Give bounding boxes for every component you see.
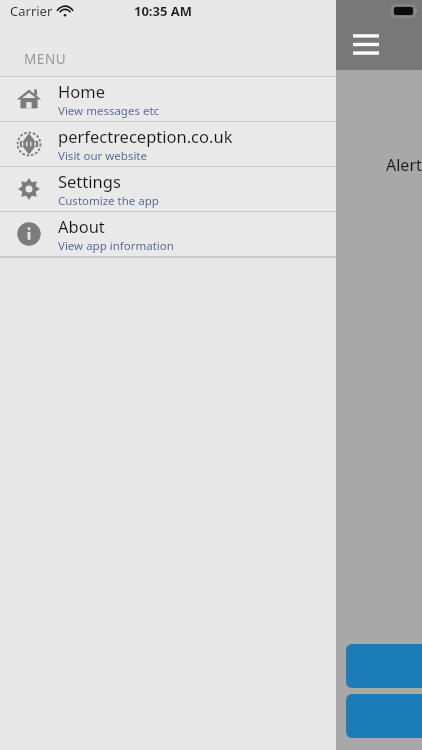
staticText: 10:35 AM — [134, 2, 193, 20]
button[interactable]: Action button — [346, 644, 422, 688]
button[interactable]: Settings — [0, 167, 336, 211]
staticText: Settings — [58, 170, 121, 192]
staticText: Customize the app — [58, 193, 159, 209]
staticText: perfectreception.co.uk — [58, 125, 233, 147]
button[interactable]: perfectreception.co.uk — [0, 122, 336, 166]
staticText: Visit our website — [58, 148, 147, 164]
staticText: Home — [58, 80, 105, 102]
button[interactable]: Home — [0, 77, 336, 121]
button[interactable]: Open menu — [346, 22, 386, 62]
staticText: Alert — [386, 154, 422, 176]
staticText: MENU — [24, 50, 67, 68]
button[interactable]: Action button — [346, 694, 422, 738]
button[interactable]: About — [0, 212, 336, 256]
staticText: View messages etc — [58, 103, 160, 119]
staticText: View app information — [58, 238, 174, 254]
staticText: Carrier — [10, 2, 53, 20]
staticText: About — [58, 215, 105, 237]
